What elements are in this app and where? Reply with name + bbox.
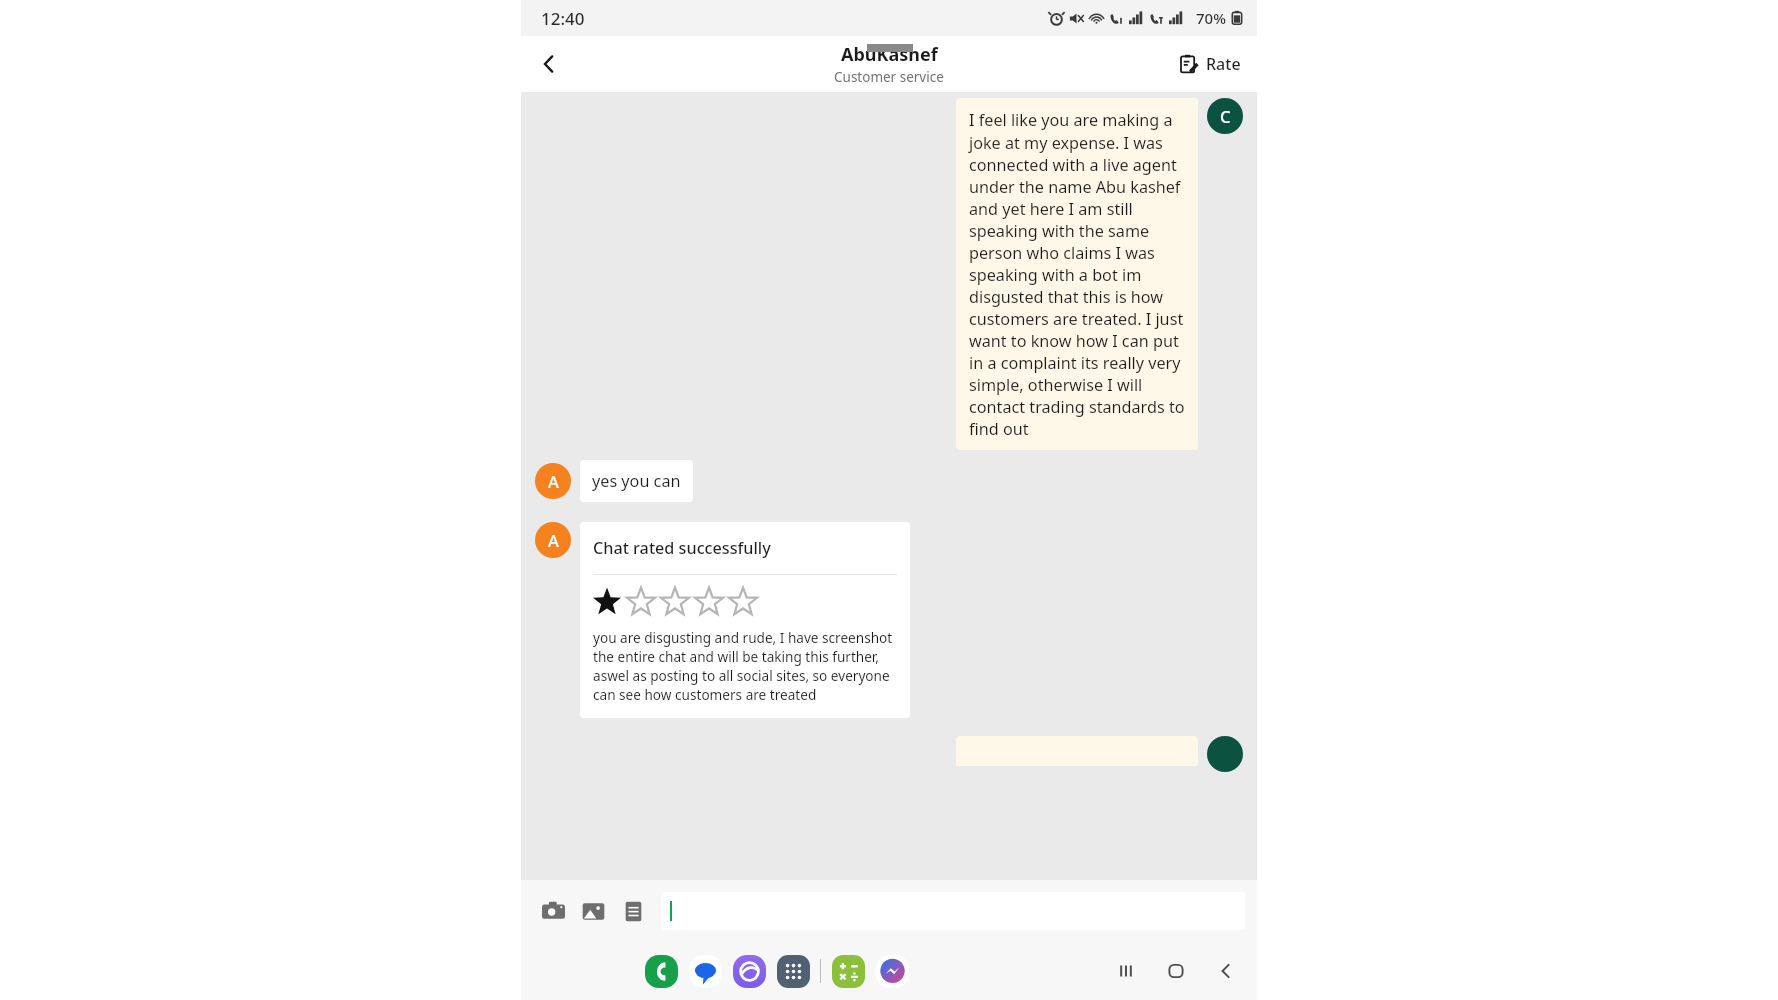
staticText: A [548,529,559,552]
button[interactable]: Back [1201,946,1251,996]
button[interactable]: Phone [639,949,683,993]
button[interactable]: Camera [533,891,573,931]
staticText: Rate [1206,53,1241,75]
staticText: you are disgusting and rude, I have scre… [593,628,896,704]
button[interactable]: Chat rated successfully [580,522,910,718]
button[interactable]: Calculator [826,949,870,993]
button[interactable]: I feel like you are making a joke at my … [956,98,1198,450]
button[interactable]: Internet [727,949,771,993]
staticText: AbuKashef [841,42,938,67]
staticText: C [1220,105,1231,128]
button[interactable]: Messenger [870,949,914,993]
staticText: Chat rated successfully [593,537,771,559]
button[interactable]: Recents [1101,946,1151,996]
staticText: 70% [1196,8,1226,28]
button[interactable]: Document [613,891,653,931]
staticText: yes you can [592,470,681,492]
button[interactable]: C [1207,98,1243,134]
button[interactable]: Gallery [573,891,613,931]
staticText: I feel like you are making a joke at my … [969,109,1185,439]
staticText: Customer service [834,68,944,86]
button[interactable]: Back [527,42,571,86]
button[interactable]: A [535,463,571,499]
button[interactable]: Rate [1173,47,1247,81]
button[interactable]: A [535,522,571,558]
button[interactable]: Apps [771,949,815,993]
button[interactable]: Home [1151,946,1201,996]
button[interactable]: yes you can [580,460,693,502]
button[interactable] [661,892,1245,930]
button[interactable]: Messages [683,949,727,993]
staticText: 12:40 [541,7,585,30]
staticText: A [548,470,559,493]
